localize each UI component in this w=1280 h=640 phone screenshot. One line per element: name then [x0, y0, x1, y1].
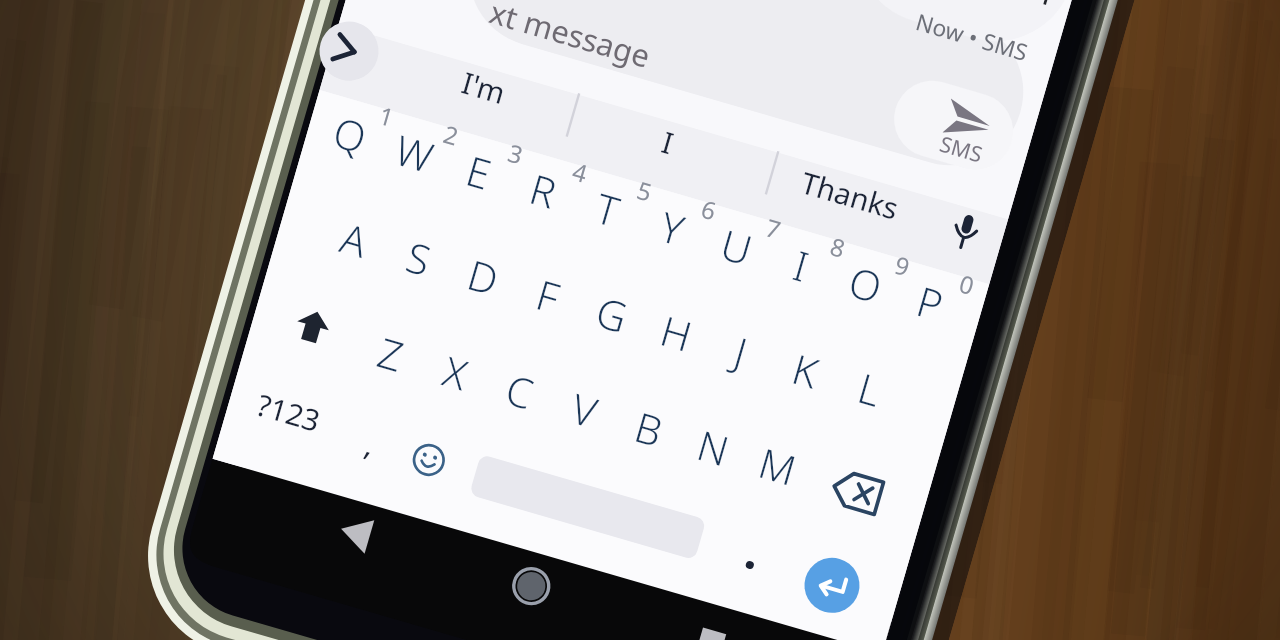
button[interactable]: Phone showing on-screen keyboard — [0, 0, 1280, 640]
